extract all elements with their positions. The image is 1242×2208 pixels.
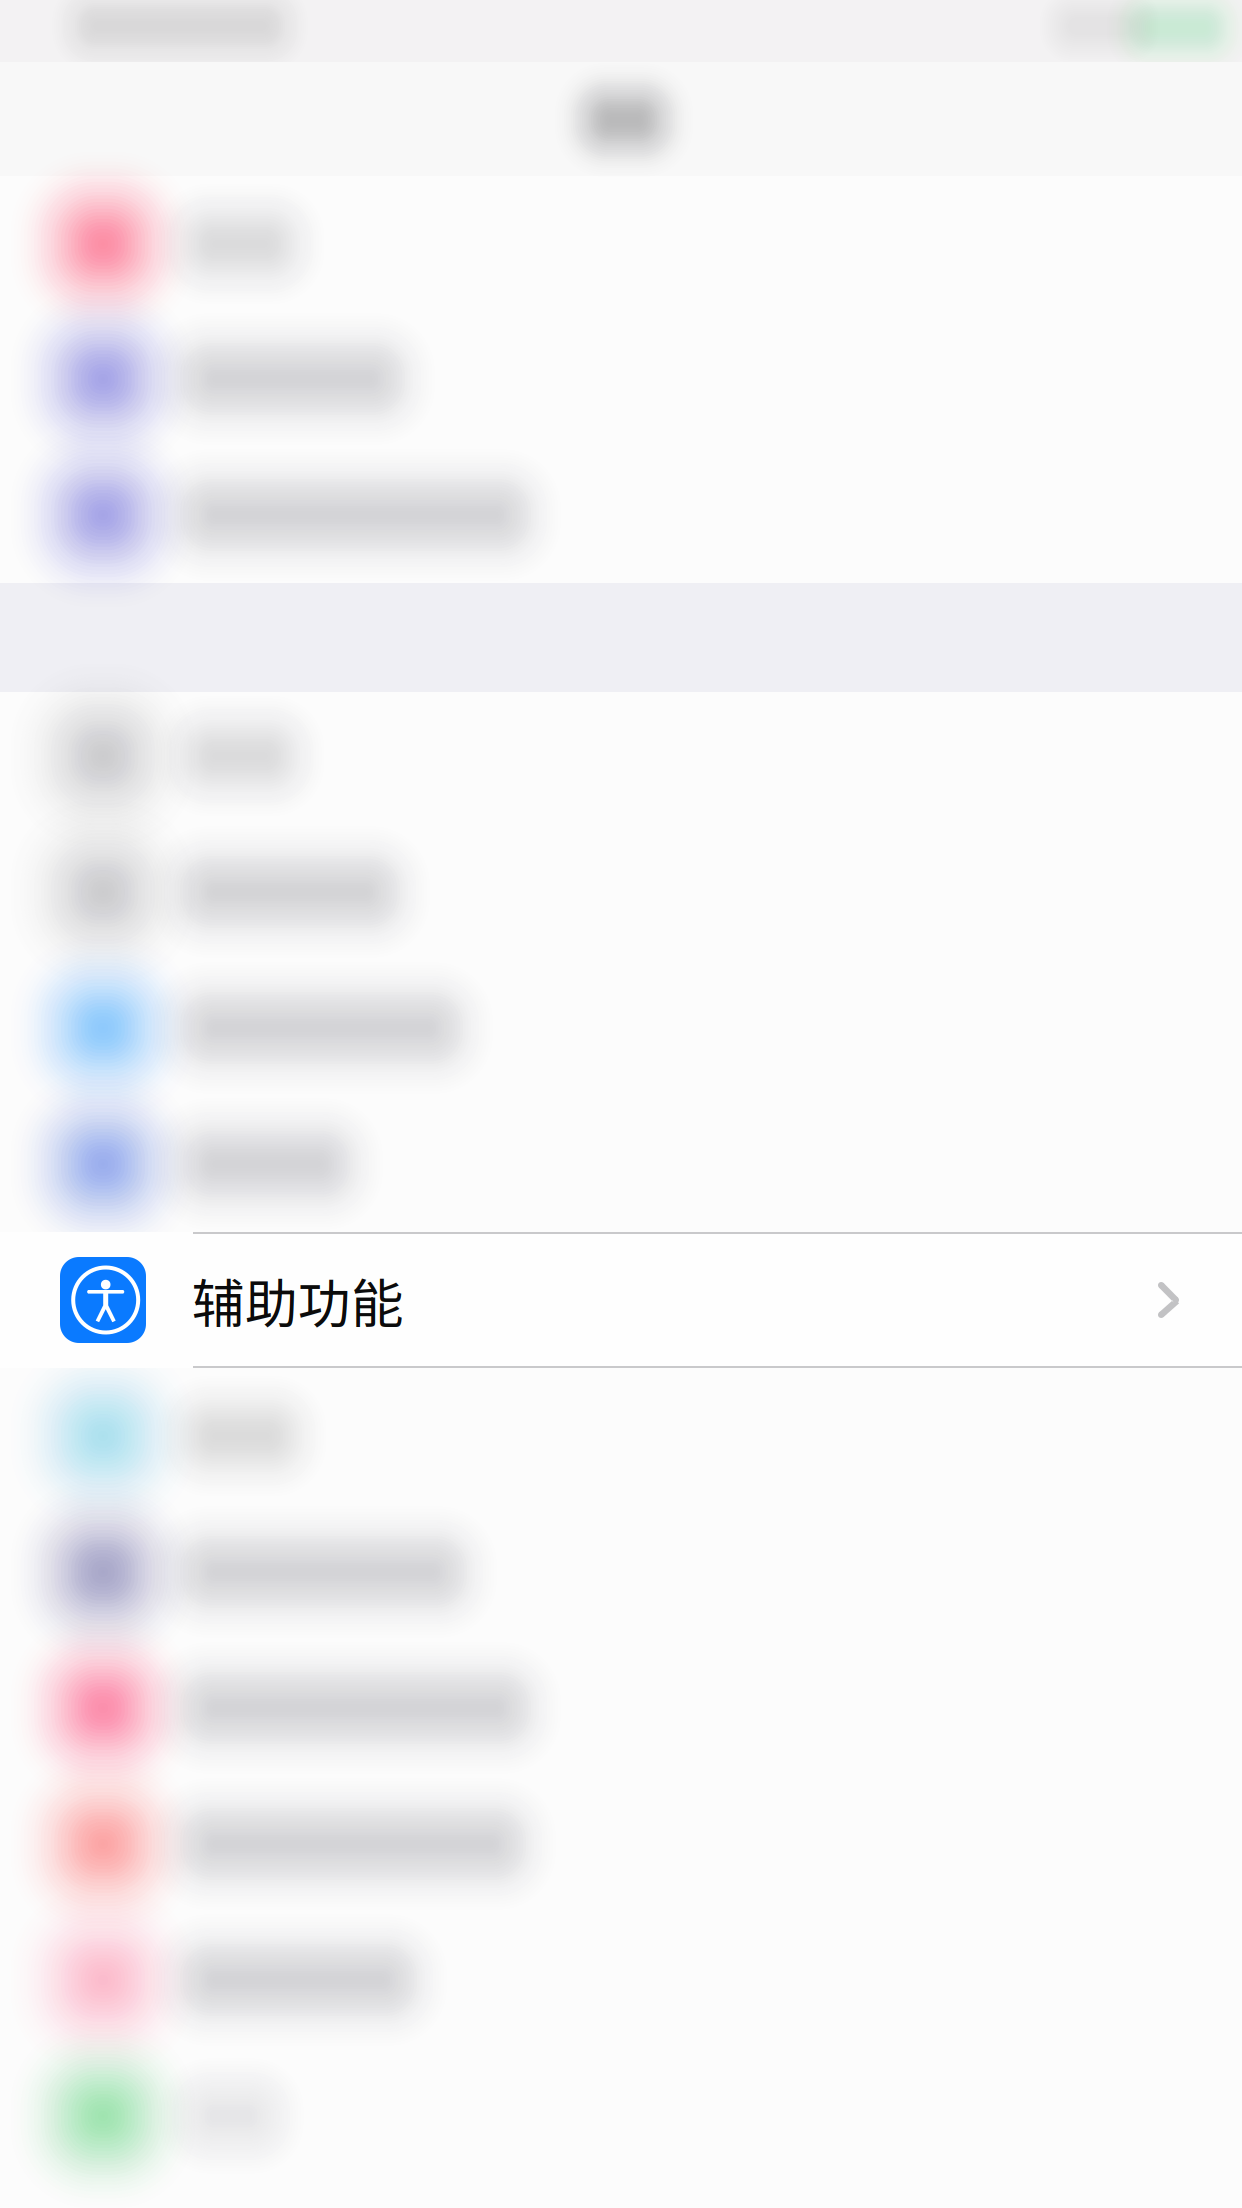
staticText: 辅助功能 [192,1262,404,1338]
button[interactable] [0,0,1242,2208]
button[interactable] [0,0,1242,2208]
button[interactable] [0,0,1242,2208]
button[interactable] [0,0,1242,2208]
button[interactable] [0,0,1242,2208]
button[interactable] [0,0,1242,2208]
button[interactable] [0,0,1242,2208]
button[interactable] [0,0,1242,2208]
button[interactable] [0,0,1242,2208]
button[interactable]: 辅助功能 [0,1232,1242,1368]
button[interactable] [0,0,1242,2208]
button[interactable] [0,0,1242,2208]
button[interactable] [0,0,1242,2208]
button[interactable] [0,0,1242,2208]
